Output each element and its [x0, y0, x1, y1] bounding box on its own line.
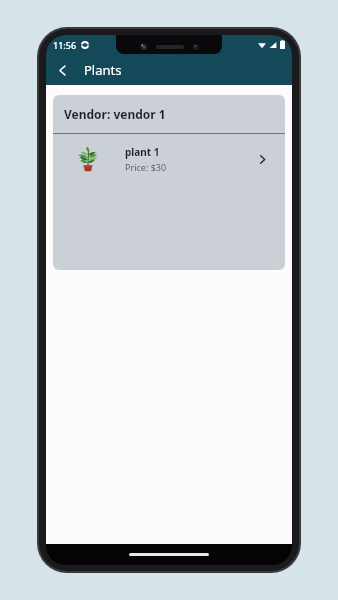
staticText: Plants [84, 61, 122, 79]
staticText: Vendor: vendor 1 [64, 106, 166, 122]
staticText: Price: $30 [125, 161, 167, 173]
staticText: plant 1 [125, 145, 160, 159]
other: Open plant 1 [251, 148, 273, 170]
button[interactable]: plant 1 [53, 134, 285, 184]
button[interactable]: Back [49, 57, 75, 83]
staticText: 11:56 [53, 39, 77, 51]
